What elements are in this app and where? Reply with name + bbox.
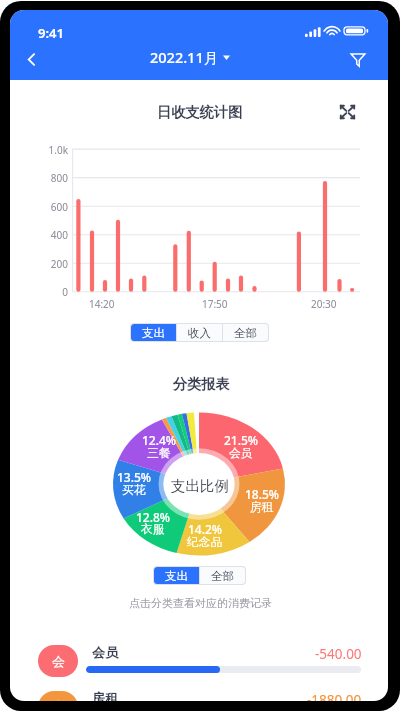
staticText: 三餐 (147, 446, 171, 461)
staticText: 支出 (142, 326, 165, 340)
button[interactable]: Fullscreen (336, 101, 358, 123)
staticText: 12.8% (136, 509, 171, 525)
staticText: 9:41 (38, 24, 64, 42)
staticText: 纪念品 (187, 535, 223, 550)
staticText: 全部 (211, 569, 234, 583)
staticText: 全部 (234, 326, 257, 340)
button[interactable]: 支出 (154, 567, 199, 584)
staticText: 会员 (229, 446, 253, 461)
staticText: 200 (50, 257, 68, 271)
button[interactable]: 支出 (131, 324, 176, 341)
staticText: 18.5% (245, 486, 280, 502)
button[interactable]: 会 (14, 621, 374, 667)
staticText: 房租 (250, 500, 274, 515)
staticText: 分类报表 (173, 375, 230, 393)
button[interactable]: Filter (344, 45, 372, 73)
staticText: 房 (52, 699, 65, 701)
staticText: 20:30 (311, 297, 337, 311)
staticText: 支出 (165, 569, 188, 583)
staticText: 会员 (92, 644, 118, 660)
staticText: 600 (50, 200, 68, 214)
staticText: 1.0k (48, 143, 68, 157)
staticText: 14.2% (188, 521, 223, 537)
button[interactable]: 2022.11月 (150, 47, 230, 67)
staticText: 2022.11月 (150, 47, 219, 67)
staticText: 14:20 (89, 297, 115, 311)
button[interactable]: Back (16, 45, 46, 73)
button[interactable]: 全部 (200, 567, 245, 584)
staticText: 400 (50, 228, 68, 242)
staticText: 衣服 (141, 522, 165, 537)
staticText: 0 (62, 285, 68, 299)
staticText: -540.00 (315, 645, 362, 663)
staticText: 收入 (188, 326, 211, 340)
staticText: 800 (50, 171, 68, 185)
staticText: 21.5% (224, 432, 259, 448)
button[interactable]: 收入 (177, 324, 222, 341)
staticText: 买花 (122, 483, 146, 498)
staticText: 点击分类查看对应的消费记录 (129, 596, 272, 610)
staticText: 日收支统计图 (157, 103, 243, 121)
staticText: 支出比例 (171, 477, 229, 495)
staticText: -1880.00 (307, 691, 362, 701)
button[interactable]: 全部 (223, 324, 268, 341)
staticText: 13.5% (117, 469, 152, 485)
staticText: 房租 (92, 690, 118, 701)
staticText: 会 (52, 653, 65, 669)
staticText: 17:50 (202, 297, 228, 311)
staticText: 12.4% (142, 432, 177, 448)
button[interactable]: 房 (14, 667, 374, 701)
